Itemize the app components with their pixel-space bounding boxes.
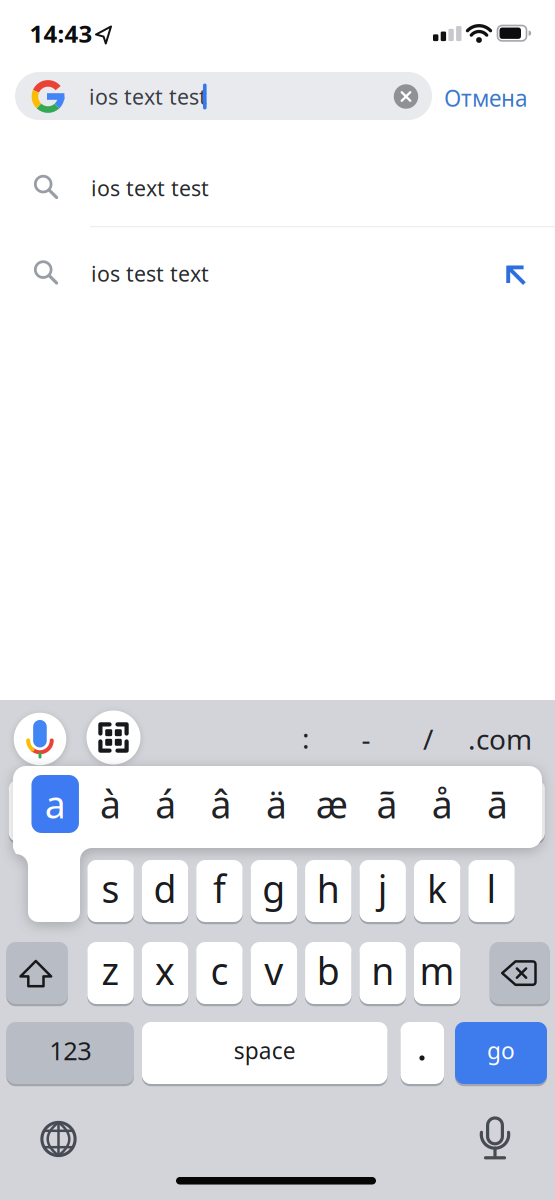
button[interactable]: á (155, 779, 176, 829)
button[interactable]: 123 (6, 1022, 134, 1084)
button[interactable]: k (414, 860, 460, 922)
button[interactable] (226, 780, 273, 842)
staticText: ā (487, 779, 508, 829)
staticText: h (317, 864, 340, 913)
staticText: k (427, 864, 447, 913)
button[interactable]: : (302, 719, 310, 757)
button[interactable]: v (251, 942, 297, 1004)
button[interactable]: g (251, 860, 297, 922)
button[interactable] (394, 84, 418, 109)
staticText: g (262, 864, 285, 913)
button[interactable] (6, 942, 68, 1004)
button[interactable]: ã (376, 779, 397, 829)
button[interactable] (444, 780, 490, 842)
button[interactable] (0, 235, 555, 311)
button[interactable] (335, 780, 382, 842)
button[interactable]: æ (316, 779, 348, 829)
button[interactable]: space (142, 1022, 387, 1084)
staticText: x (155, 946, 175, 995)
staticText: a (45, 779, 66, 829)
staticText: c (210, 946, 228, 995)
staticText: d (153, 864, 176, 913)
button[interactable]: h (305, 860, 351, 922)
staticText: Отмена (444, 83, 528, 113)
button[interactable] (0, 150, 555, 226)
button[interactable]: go (455, 1022, 547, 1084)
button[interactable] (15, 72, 432, 120)
button[interactable]: a (31, 775, 79, 833)
staticText: à (100, 779, 121, 829)
staticText: 14:43 (29, 18, 92, 49)
button[interactable]: l (468, 860, 515, 922)
staticText: f (213, 864, 226, 913)
button[interactable]: d (142, 860, 188, 922)
button[interactable] (475, 1118, 515, 1160)
button[interactable] (390, 780, 436, 842)
staticText: v (264, 946, 283, 995)
staticText: ios text test (91, 174, 209, 202)
button[interactable]: s (87, 860, 134, 922)
staticText: â (211, 779, 232, 829)
button[interactable]: m (414, 942, 460, 1004)
button[interactable]: f (196, 860, 243, 922)
staticText: .com (468, 720, 532, 758)
button[interactable]: c (196, 942, 243, 1004)
staticText: n (371, 946, 394, 995)
staticText: l (486, 864, 496, 913)
button[interactable]: b (305, 942, 351, 1004)
button[interactable]: x (142, 942, 188, 1004)
staticText: m (420, 946, 455, 995)
button[interactable]: ä (266, 779, 287, 829)
staticText: z (102, 946, 120, 995)
button[interactable] (14, 713, 66, 765)
staticText: b (317, 946, 340, 995)
button[interactable]: - (361, 720, 370, 758)
button[interactable]: å (432, 779, 453, 829)
button[interactable]: j (359, 860, 406, 922)
staticText: 123 (49, 1034, 91, 1067)
button[interactable] (281, 780, 327, 842)
button[interactable] (172, 780, 218, 842)
staticText: j (378, 864, 388, 913)
button[interactable] (40, 1121, 76, 1157)
button[interactable] (63, 780, 109, 842)
staticText: s (102, 864, 120, 913)
button[interactable] (86, 710, 140, 764)
button[interactable]: ā (487, 779, 508, 829)
staticText: / (423, 720, 433, 758)
staticText: space (234, 1035, 296, 1065)
staticText: - (361, 720, 370, 758)
button[interactable] (9, 780, 55, 842)
staticText: å (432, 779, 453, 829)
staticText: : (302, 719, 310, 757)
staticText: ios text test (89, 82, 207, 111)
button[interactable] (400, 1022, 444, 1084)
button[interactable] (117, 780, 164, 842)
staticText: ä (266, 779, 287, 829)
staticText: ios test text (91, 259, 209, 288)
staticText: æ (316, 779, 348, 829)
staticText: ã (376, 779, 397, 829)
button[interactable]: à (100, 779, 121, 829)
button[interactable]: z (87, 942, 134, 1004)
button[interactable]: Отмена (444, 83, 528, 113)
staticText: go (487, 1035, 515, 1065)
button[interactable] (498, 780, 545, 842)
button[interactable]: / (423, 720, 433, 758)
button[interactable]: â (211, 779, 232, 829)
button[interactable]: n (359, 942, 406, 1004)
button[interactable] (490, 942, 550, 1004)
staticText: á (155, 779, 176, 829)
button[interactable]: .com (468, 720, 532, 758)
